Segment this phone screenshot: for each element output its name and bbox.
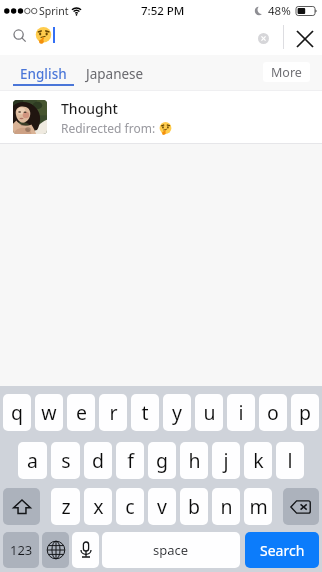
button[interactable]: Shift [3,488,40,525]
button[interactable]: e [67,394,95,431]
staticText: 7:52 PM [141,3,185,19]
button[interactable]: Close search [288,22,322,55]
button[interactable]: p [291,394,319,431]
button[interactable]: Switch keyboard [42,532,69,568]
button[interactable]: m [244,488,272,525]
staticText: x [93,493,104,520]
staticText: a [27,447,38,474]
staticText: 48% [268,3,291,19]
staticText: j [223,447,229,474]
staticText: space [153,541,189,559]
staticText: k [253,447,264,474]
staticText: r [109,399,118,426]
staticText: o [267,399,279,426]
button[interactable]: x [84,488,112,525]
button[interactable]: s [51,442,80,479]
staticText: s [61,447,71,474]
staticText: c [125,493,135,520]
staticText: p [299,399,311,426]
button[interactable]: Clear text [252,22,274,55]
button[interactable]: Dictate [72,532,99,568]
staticText: n [220,493,233,520]
button[interactable]: f [116,442,144,479]
button[interactable]: a [18,442,47,479]
button[interactable]: j [212,442,240,479]
staticText: e [76,399,87,426]
staticText: w [41,399,57,426]
staticText: Search [260,541,305,560]
staticText: z [61,493,71,520]
button[interactable]: Search [245,532,319,568]
button[interactable]: o [259,394,287,431]
button[interactable]: English [13,55,74,91]
button[interactable]: k [244,442,272,479]
button[interactable]: z [51,488,80,525]
staticText: t [141,399,149,426]
button[interactable]: y [163,394,191,431]
staticText: i [238,399,244,426]
button[interactable]: n [212,488,240,525]
button[interactable]: Backspace [283,488,319,525]
staticText: d [92,447,104,474]
button[interactable]: v [148,488,176,525]
staticText: Sprint [39,4,69,18]
staticText: u [203,399,216,426]
staticText: l [287,447,293,474]
staticText: Redirected from: [61,120,159,136]
staticText: q [11,399,23,426]
button[interactable]: l [276,442,304,479]
button[interactable]: r [99,394,127,431]
staticText: More [271,64,302,81]
staticText: v [157,493,167,520]
button[interactable]: g [148,442,176,479]
button[interactable]: i [227,394,255,431]
staticText: Japanese [86,65,144,83]
staticText: y [172,399,182,426]
staticText: m [249,493,268,520]
button[interactable]: Thought [0,91,322,143]
staticText: 123 [10,541,33,559]
button[interactable]: 123 [3,532,39,568]
staticText: g [156,447,168,474]
button[interactable]: w [35,394,63,431]
staticText: Thought [61,99,118,118]
staticText: b [188,493,200,520]
button[interactable]: u [195,394,223,431]
button[interactable]: b [180,488,208,525]
button[interactable]: c [116,488,144,525]
staticText: English [20,65,67,83]
button[interactable]: d [84,442,112,479]
staticText: h [188,447,201,474]
button[interactable]: h [180,442,208,479]
button[interactable]: q [3,394,31,431]
button[interactable]: t [131,394,159,431]
button[interactable]: Japanese [83,55,146,91]
button[interactable]: More [263,62,310,82]
staticText: f [127,447,134,474]
button[interactable]: space [102,532,240,568]
